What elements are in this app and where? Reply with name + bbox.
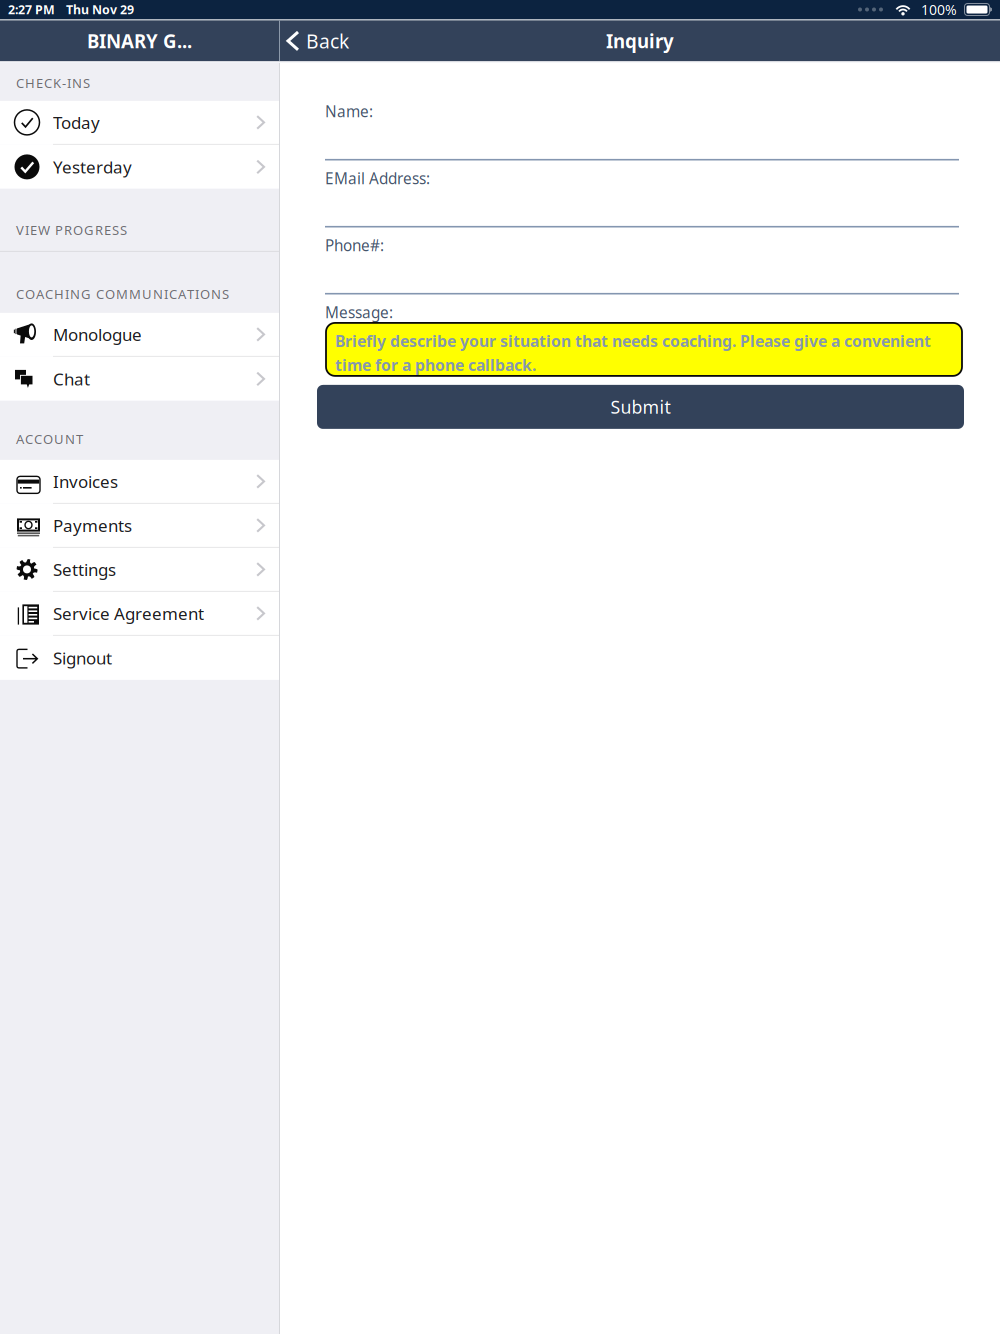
button[interactable]: Message text view	[326, 323, 962, 376]
staticText: Chat	[53, 367, 90, 390]
staticText: 2:27 PM	[8, 1, 55, 18]
staticText: Submit	[610, 395, 670, 419]
button[interactable]: Signout	[0, 636, 279, 680]
staticText: Invoices	[53, 470, 118, 493]
staticText: Inquiry	[606, 28, 674, 54]
button[interactable]: Submit	[317, 385, 964, 429]
button[interactable]: Monologue	[0, 313, 279, 357]
staticText: Briefly describe your situation that nee…	[335, 329, 931, 377]
button[interactable]: Invoices	[0, 460, 279, 504]
staticText: C H E C K - I N S	[16, 74, 90, 92]
button[interactable]: Payments	[0, 504, 279, 548]
staticText: EMail Address:	[325, 168, 430, 189]
button[interactable]: Service Agreement	[0, 592, 279, 636]
staticText: Name:	[325, 101, 373, 122]
staticText: Back	[306, 28, 349, 54]
staticText: Phone#:	[325, 235, 384, 256]
button[interactable]: Chat	[0, 357, 279, 401]
staticText: C O A C H I N G C O M M U N I C A T I O …	[16, 285, 229, 303]
button[interactable]: Back	[280, 20, 349, 61]
staticText: Thu Nov 29	[66, 1, 134, 18]
staticText: Today	[53, 111, 100, 134]
staticText: BINARY G...	[87, 28, 192, 54]
staticText: A C C O U N T	[16, 430, 83, 448]
staticText: Service Agreement	[53, 602, 204, 625]
button[interactable]: Name text field	[325, 121, 959, 161]
staticText: Yesterday	[53, 155, 132, 178]
button[interactable]: Today	[0, 101, 279, 145]
button[interactable]: Yesterday	[0, 145, 279, 189]
staticText: 100%	[921, 0, 957, 19]
staticText: Signout	[53, 646, 112, 669]
staticText: Monologue	[53, 323, 142, 346]
staticText: V I E W P R O G R E S S	[16, 221, 127, 239]
staticText: Payments	[53, 514, 132, 537]
button[interactable]: Settings	[0, 548, 279, 592]
staticText: Message:	[325, 302, 393, 323]
staticText: Settings	[53, 558, 116, 581]
